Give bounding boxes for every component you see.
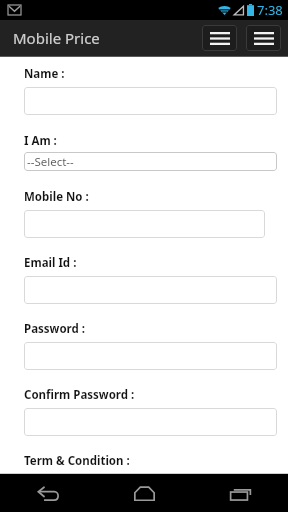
button[interactable]	[24, 342, 277, 370]
staticText: --Select--	[27, 154, 74, 170]
staticText: Email Id :	[24, 255, 77, 271]
button[interactable]: Menu	[202, 25, 237, 51]
button[interactable]: Navigation menu	[246, 25, 281, 51]
staticText: Name :	[24, 66, 65, 82]
staticText: Mobile No :	[24, 189, 89, 205]
button[interactable]: Back	[0, 474, 96, 512]
button[interactable]	[24, 408, 277, 436]
staticText: Password :	[24, 321, 86, 337]
staticText: Term & Condition :	[24, 453, 130, 469]
button[interactable]	[24, 210, 265, 238]
staticText: Confirm Password :	[24, 387, 135, 403]
button[interactable]: Home	[96, 474, 192, 512]
staticText: I Am :	[24, 133, 57, 149]
button[interactable]: --Select--	[24, 152, 277, 171]
button[interactable]	[24, 87, 277, 115]
staticText: Mobile Price	[13, 28, 100, 48]
staticText: 7:38	[257, 1, 283, 19]
button[interactable]	[24, 276, 277, 304]
button[interactable]: Recent apps	[192, 474, 288, 512]
